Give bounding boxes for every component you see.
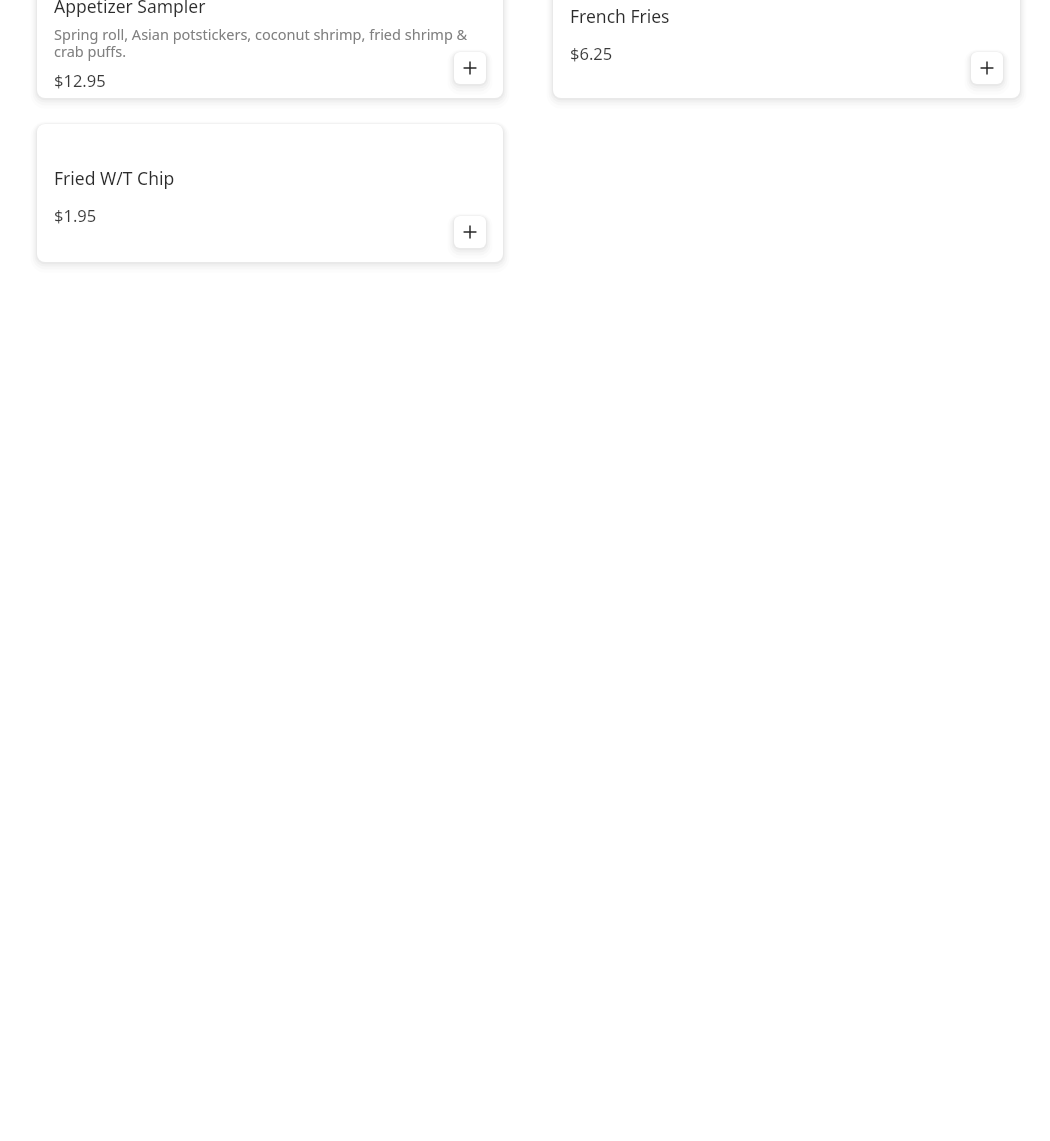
button[interactable]: Add item (454, 216, 486, 248)
button[interactable]: Fried W/T Chip (37, 124, 503, 262)
staticText: $12.95 (54, 69, 106, 91)
button[interactable]: Add item (454, 52, 486, 84)
staticText: French Fries (570, 4, 670, 28)
staticText: $6.25 (570, 42, 613, 64)
staticText: Spring roll, Asian potstickers, coconut … (54, 24, 468, 61)
staticText: $1.95 (54, 204, 97, 226)
staticText: Fried W/T Chip (54, 166, 175, 190)
button[interactable]: Appetizer Sampler (37, 0, 503, 98)
button[interactable]: French Fries (553, 0, 1020, 98)
button[interactable]: Add item (971, 52, 1003, 84)
staticText: Appetizer Sampler (54, 0, 206, 18)
